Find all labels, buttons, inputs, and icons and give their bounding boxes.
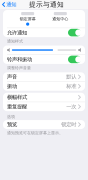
staticText: 通知中心 [52,16,68,21]
staticText: 默认 [66,74,76,80]
button[interactable]: 允许通知 [3,28,85,37]
staticText: 一次 [66,103,76,110]
button[interactable]: 声音 [3,72,85,81]
button[interactable]: 锁定屏幕 [20,12,36,26]
button[interactable]: 横幅样式 [3,93,85,102]
staticText: 标准 [66,83,76,90]
staticText: 选项 [7,114,15,119]
staticText: 铃声和振动 [7,56,32,63]
button[interactable]: 振动 [3,82,85,91]
staticText: 声音 [7,74,17,80]
staticText: 横幅样式 [7,94,27,101]
button[interactable]: 通知中心 [52,12,68,26]
staticText: 通知样式 [7,39,23,43]
button[interactable]: 通知 [0,0,19,9]
staticText: 振动 [7,83,17,90]
staticText: 提示与通知 [29,0,64,9]
staticText: 锁定屏幕 [20,16,36,21]
staticText: 通知 [6,1,16,8]
staticText: 预览 [7,121,17,128]
staticText: 重复提醒 [7,103,27,110]
staticText: 调整铃声音量 [7,65,31,70]
button[interactable]: 重复提醒 [3,102,85,111]
button[interactable]: 预览 [3,120,85,129]
staticText: 锁定时 [61,121,76,128]
staticText: 允许通知 [7,29,27,36]
staticText: 通知预览可在锁定屏幕上显示。 [7,131,63,135]
button[interactable]: 铃声和振动 [3,55,85,64]
